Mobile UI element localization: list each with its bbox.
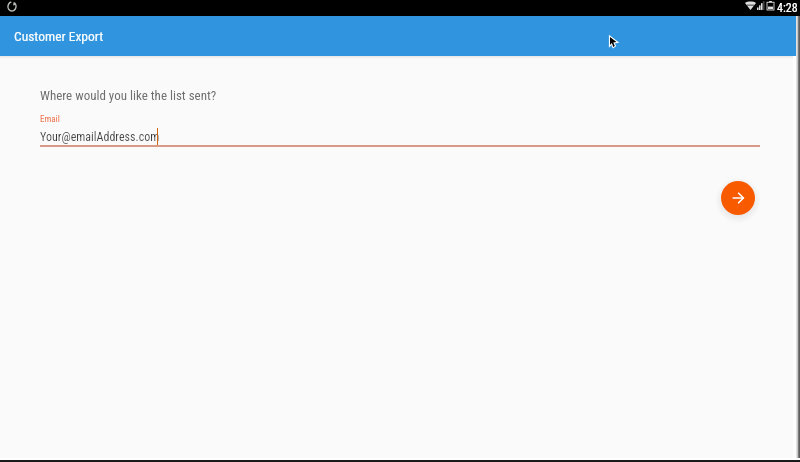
staticText: Customer Export: [14, 28, 104, 44]
staticText: 4:28: [777, 1, 798, 15]
staticText: Email: [40, 114, 60, 125]
button[interactable]: Next: [721, 181, 755, 215]
staticText: Your@emailAddress.com: [40, 130, 160, 144]
button[interactable]: Email: [40, 110, 760, 147]
staticText: Where would you like the list sent?: [40, 88, 217, 103]
